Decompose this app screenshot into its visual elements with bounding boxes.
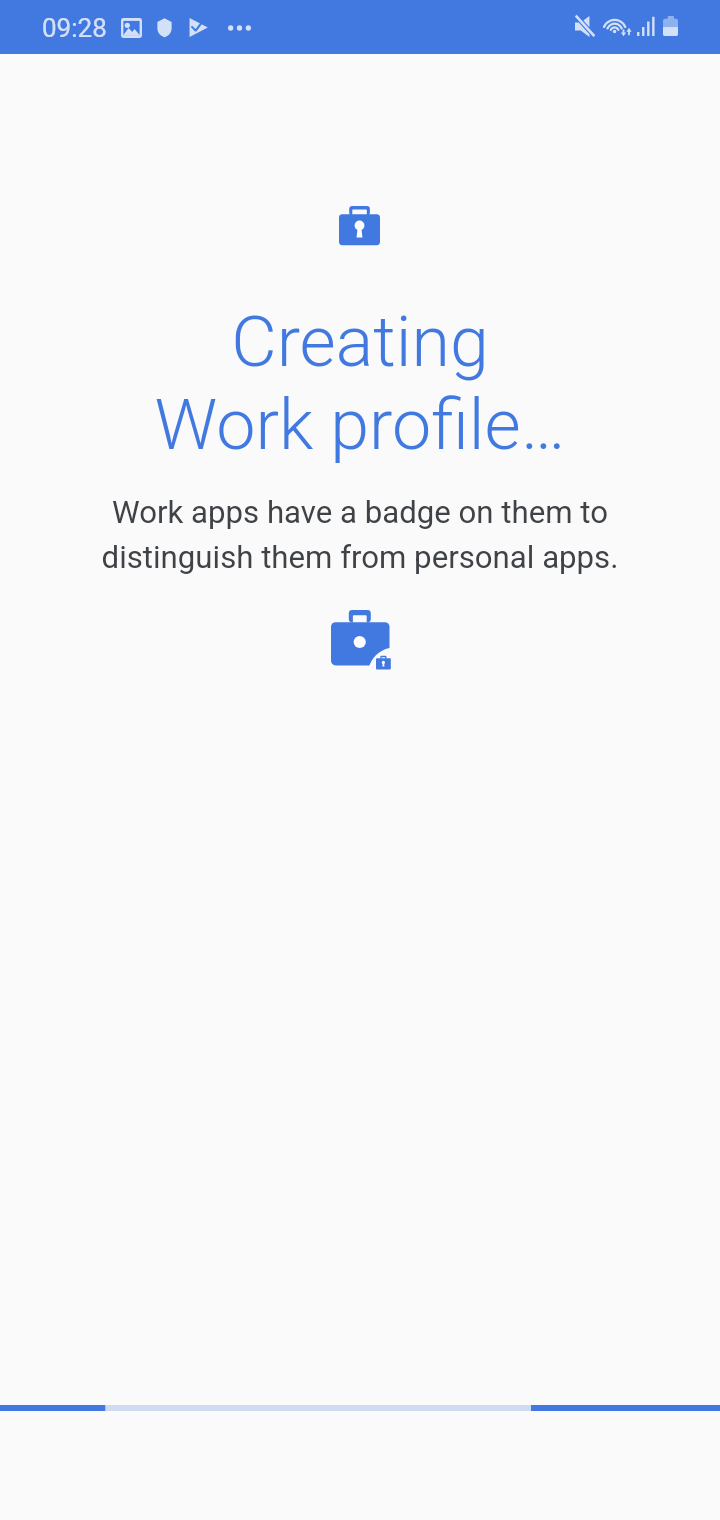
other: Work app badge example xyxy=(331,610,396,675)
other: More notifications xyxy=(228,25,251,31)
other: Wi-Fi xyxy=(602,15,631,37)
other: Screenshot xyxy=(121,18,142,38)
other: Play Store xyxy=(189,18,208,37)
other: Battery xyxy=(663,16,678,36)
button[interactable]: Status bar xyxy=(0,0,720,54)
staticText: Work apps have a badge on them to distin… xyxy=(0,494,720,576)
other: Ringer muted xyxy=(575,16,594,37)
other: Security xyxy=(156,17,173,38)
staticText: Creating Work profile… xyxy=(0,301,720,466)
other: Work profile lock xyxy=(339,206,380,246)
staticText: 09:28 xyxy=(42,13,107,43)
other: Mobile signal xyxy=(637,16,655,36)
